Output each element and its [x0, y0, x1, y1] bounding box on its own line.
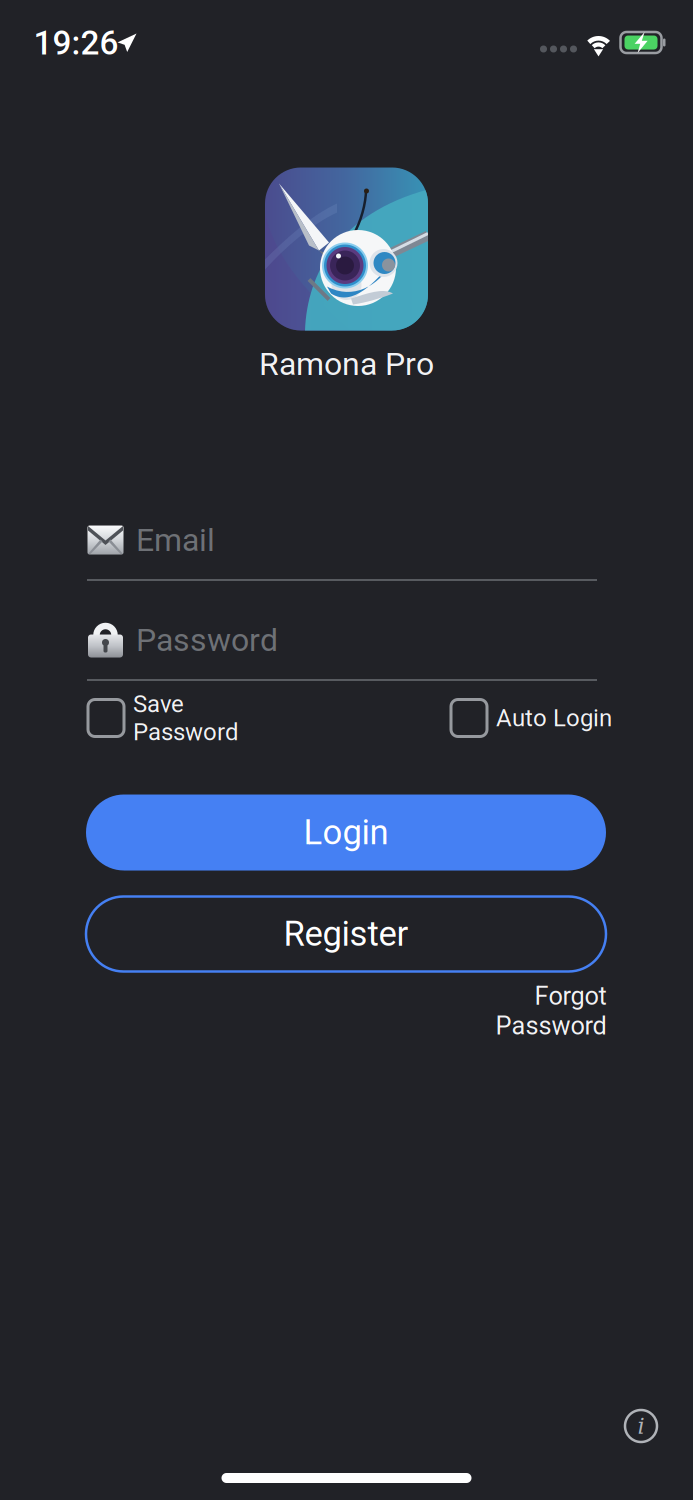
staticText: Save Password [133, 690, 239, 746]
button[interactable]: Save Password [88, 687, 268, 749]
staticText: Ramona Pro [259, 345, 434, 383]
staticText: Register [283, 914, 408, 954]
staticText: 19:26 [33, 23, 118, 63]
button[interactable]: Auto Login [451, 696, 621, 740]
staticText: Forgot Password [495, 981, 606, 1041]
button[interactable]: Information [616, 1401, 666, 1451]
staticText: Login [303, 812, 388, 853]
staticText: Auto Login [496, 704, 612, 732]
staticText: Email [136, 521, 215, 559]
staticText: Password [136, 621, 278, 659]
button[interactable]: Login [86, 794, 606, 870]
button[interactable]: Register [86, 896, 606, 971]
staticText: i [637, 1413, 644, 1439]
button[interactable]: Forgot Password [466, 982, 606, 1040]
